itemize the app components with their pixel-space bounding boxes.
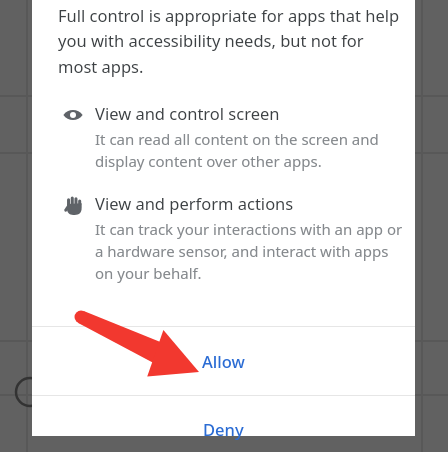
- other: Arrow pointing to Allow: [0, 0, 448, 452]
- staticText: Full control is appropriate for apps tha…: [58, 4, 401, 78]
- staticText: Allow: [202, 350, 245, 372]
- staticText: It can read all content on the screen an…: [95, 129, 403, 172]
- button[interactable]: Deny: [32, 396, 415, 452]
- staticText: It can track your interactions with an a…: [95, 219, 403, 284]
- button[interactable]: Allow: [32, 327, 415, 395]
- staticText: View and control screen: [95, 102, 280, 124]
- staticText: View and perform actions: [95, 192, 294, 214]
- staticText: Deny: [203, 418, 244, 440]
